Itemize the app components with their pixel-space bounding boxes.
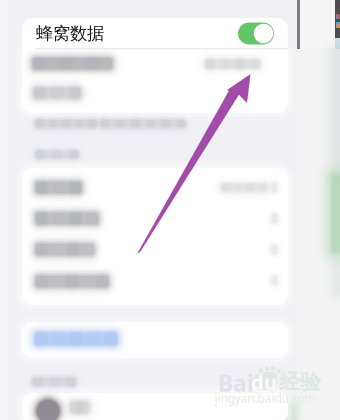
staticText: 经验	[279, 369, 321, 395]
staticText: du	[251, 369, 277, 395]
staticText: 蜂窝数据	[36, 23, 104, 44]
staticText: jingyan.baidu.com	[214, 390, 315, 406]
button[interactable]: 蜂窝数据	[22, 18, 288, 49]
staticText: Bai	[218, 368, 254, 398]
